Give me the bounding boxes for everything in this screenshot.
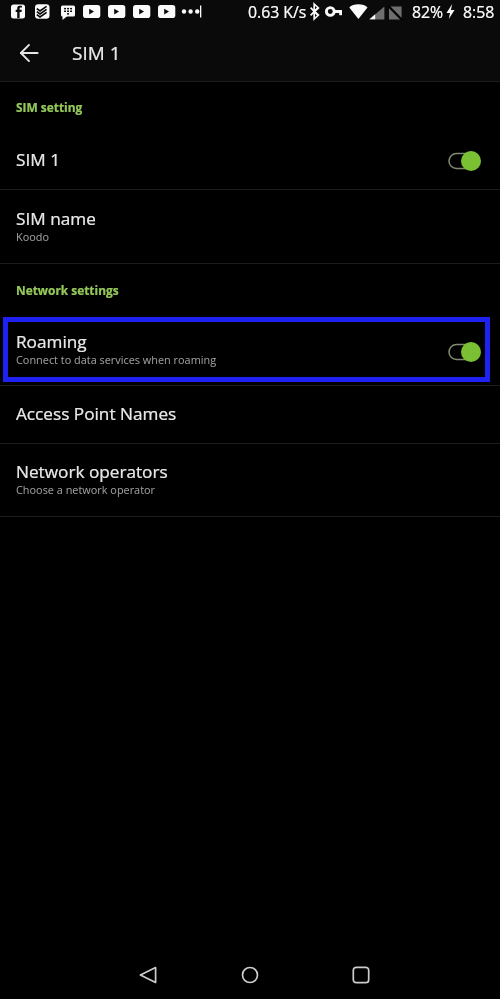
button[interactable]: Toggle	[449, 340, 481, 364]
button[interactable]: Access Point Names	[0, 386, 500, 443]
button[interactable]: Roaming	[0, 319, 500, 385]
staticText: Network settings	[16, 282, 119, 298]
staticText: Roaming	[16, 330, 87, 353]
staticText: 82%	[412, 1, 444, 23]
button[interactable]: Back	[124, 951, 172, 999]
button[interactable]: Network operators	[0, 444, 500, 516]
button[interactable]: Home	[226, 951, 274, 999]
button[interactable]: Navigate up	[5, 29, 53, 77]
staticText: Choose a network operator	[16, 482, 156, 497]
button[interactable]: SIM 1	[0, 132, 500, 189]
staticText: Access Point Names	[16, 402, 177, 425]
staticText: SIM 1	[72, 40, 121, 66]
button[interactable]: SIM name	[0, 190, 500, 263]
staticText: SIM 1	[16, 148, 60, 171]
staticText: 8:58	[463, 1, 495, 23]
button[interactable]: Recent apps	[337, 951, 385, 999]
staticText: SIM setting	[16, 99, 83, 115]
staticText: Network operators	[16, 460, 168, 483]
staticText: Koodo	[16, 229, 49, 244]
staticText: Connect to data services when roaming	[16, 352, 217, 367]
staticText: 0.63 K/s	[248, 1, 307, 23]
button[interactable]: Toggle	[449, 149, 481, 173]
staticText: SIM name	[16, 207, 96, 230]
